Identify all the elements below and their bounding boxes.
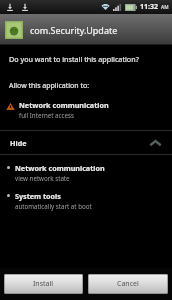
staticText: com.Security.Update	[30, 24, 118, 36]
staticText: Network communication	[19, 100, 109, 110]
other: Collapse	[149, 139, 162, 147]
staticText: AM	[161, 4, 169, 10]
other: Warning	[6, 102, 15, 111]
staticText: automatically start at boot	[15, 202, 92, 210]
button[interactable]: Install	[4, 274, 83, 294]
staticText: 11:32	[140, 2, 158, 12]
button[interactable]: Network communication	[0, 162, 172, 183]
staticText: view network state	[15, 174, 70, 182]
staticText: Hide	[10, 138, 27, 148]
button[interactable]: Cancel	[88, 274, 168, 294]
staticText: System tools	[15, 191, 61, 201]
button[interactable]: Warning	[0, 98, 172, 121]
staticText: Network communication	[15, 163, 105, 173]
button[interactable]: System tools	[0, 190, 172, 211]
staticText: Allow this application to:	[9, 81, 90, 91]
staticText: Cancel	[117, 279, 139, 289]
button[interactable]: Hide	[0, 134, 172, 152]
staticText: full Internet access	[19, 111, 74, 119]
staticText: Install	[33, 279, 54, 289]
staticText: Do you want to install this application?	[9, 54, 139, 64]
